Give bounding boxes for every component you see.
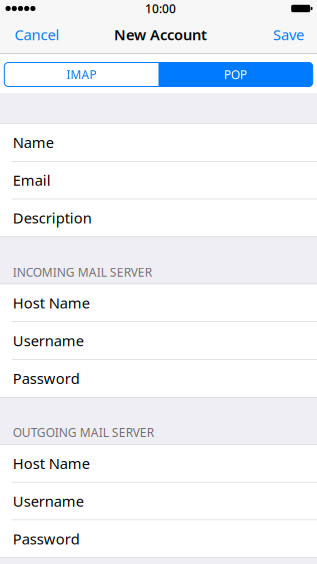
button[interactable]: Password — [0, 520, 317, 558]
button[interactable]: Cancel — [0, 21, 67, 53]
staticText: Email — [13, 170, 51, 190]
staticText: Username — [13, 491, 84, 511]
button[interactable]: Username — [0, 322, 317, 359]
button[interactable]: IMAP — [4, 62, 158, 86]
button[interactable]: Host Name — [0, 444, 317, 482]
button[interactable]: Password — [0, 359, 317, 397]
button[interactable]: Description — [0, 199, 317, 237]
staticText: Host Name — [13, 453, 90, 473]
staticText: 10:00 — [145, 0, 176, 16]
button[interactable]: Host Name — [0, 284, 317, 322]
staticText: Description — [13, 208, 92, 228]
button[interactable]: Name — [0, 123, 317, 161]
button[interactable]: Email — [0, 161, 317, 199]
staticText: Password — [13, 529, 80, 548]
staticText: OUTGOING MAIL SERVER — [13, 424, 154, 440]
staticText: Host Name — [13, 293, 90, 313]
staticText: Password — [13, 369, 80, 388]
staticText: INCOMING MAIL SERVER — [13, 264, 152, 280]
staticText: POP — [224, 66, 247, 82]
button[interactable]: Save — [265, 21, 317, 53]
staticText: IMAP — [66, 66, 96, 82]
button[interactable]: POP — [158, 62, 313, 86]
staticText: Cancel — [14, 25, 59, 44]
staticText: New Account — [114, 25, 207, 44]
staticText: Username — [13, 331, 84, 350]
button[interactable]: Username — [0, 482, 317, 520]
staticText: Name — [13, 133, 54, 152]
staticText: Save — [273, 25, 304, 44]
